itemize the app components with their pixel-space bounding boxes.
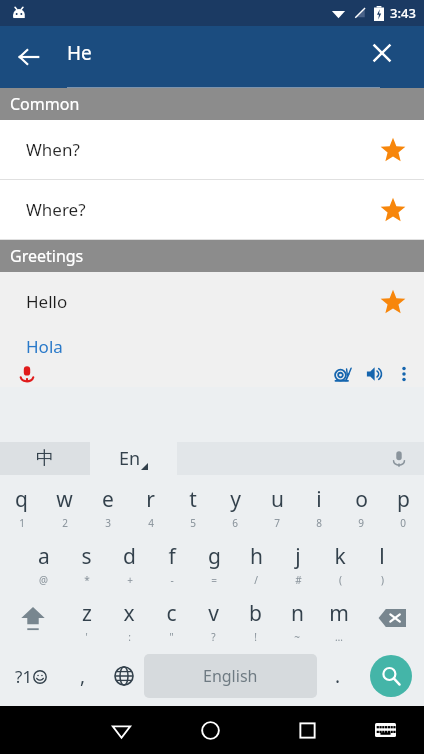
staticText: 7 (274, 516, 280, 530)
button[interactable]: ?1 (0, 646, 62, 706)
staticText: p (397, 485, 410, 514)
button[interactable]: Switch keyboard (353, 706, 418, 754)
button[interactable]: Play (362, 361, 388, 387)
staticText: 8 (316, 516, 322, 530)
staticText: 中 (36, 447, 54, 470)
button[interactable]: k (319, 532, 361, 589)
staticText: i (316, 485, 322, 514)
staticText: f (168, 542, 176, 571)
staticText: x (123, 599, 135, 628)
button[interactable]: q (0, 475, 43, 532)
button[interactable]: n (276, 589, 318, 646)
staticText: @ (39, 573, 48, 587)
button[interactable]: d (108, 532, 151, 589)
button[interactable]: j (277, 532, 319, 589)
button[interactable]: p (382, 475, 424, 532)
button[interactable]: i (298, 475, 340, 532)
staticText: ?1 (15, 665, 33, 688)
button[interactable]: Back (8, 36, 50, 78)
staticText: 5 (190, 516, 196, 530)
button[interactable]: b (234, 589, 276, 646)
staticText: u (271, 485, 284, 514)
button[interactable]: Back (83, 706, 159, 754)
button[interactable]: e (86, 475, 129, 532)
button[interactable]: En (90, 442, 177, 475)
staticText: 9 (358, 516, 364, 530)
staticText: En (119, 446, 141, 471)
button[interactable]: Play slowly (330, 361, 356, 387)
staticText: k (334, 542, 346, 571)
button[interactable]: v (192, 589, 234, 646)
button[interactable]: s (65, 532, 108, 589)
staticText: n (291, 599, 304, 628)
staticText: , (80, 663, 86, 689)
staticText: Greetings (10, 245, 84, 267)
staticText: q (15, 485, 28, 514)
staticText: l (379, 542, 385, 571)
staticText: 3:43 (390, 4, 416, 22)
staticText: 6 (232, 516, 238, 530)
button[interactable]: Favorite (376, 285, 410, 319)
other: Voice input (388, 448, 410, 470)
button[interactable]: l (361, 532, 403, 589)
button[interactable]: Hello (0, 272, 424, 387)
staticText: z (82, 599, 92, 628)
button[interactable]: . (317, 646, 358, 706)
staticText: e (102, 485, 114, 514)
button[interactable]: Favorite (376, 193, 410, 227)
button[interactable]: m (318, 589, 360, 646)
button[interactable]: English (144, 654, 317, 698)
staticText: Hello (26, 290, 68, 313)
button[interactable]: y (214, 475, 256, 532)
button[interactable]: t (172, 475, 214, 532)
button[interactable]: Home (159, 706, 262, 754)
staticText: # (295, 573, 302, 587)
staticText: ! (254, 630, 257, 644)
button[interactable]: u (256, 475, 298, 532)
button[interactable]: w (43, 475, 86, 532)
staticText: t (189, 485, 197, 514)
button[interactable]: Recent apps (262, 706, 353, 754)
button[interactable]: More options (392, 362, 416, 386)
staticText: j (295, 542, 301, 571)
button[interactable]: Change language (103, 646, 144, 706)
staticText: " (169, 630, 174, 644)
staticText: / (254, 573, 258, 587)
staticText: v (208, 599, 219, 628)
staticText: ? (211, 630, 216, 644)
button[interactable]: o (340, 475, 382, 532)
button[interactable]: Voice input (177, 442, 424, 475)
staticText: d (123, 542, 136, 571)
staticText: o (355, 485, 368, 514)
button[interactable]: , (62, 646, 103, 706)
button[interactable]: Shift (0, 589, 65, 646)
button[interactable]: z (65, 589, 108, 646)
button[interactable]: c (150, 589, 192, 646)
button[interactable]: h (235, 532, 277, 589)
staticText: 4 (148, 516, 154, 530)
staticText: ) (381, 573, 384, 587)
button[interactable]: Backspace (360, 589, 424, 646)
staticText: . (335, 663, 341, 689)
button[interactable]: Search (358, 646, 424, 706)
staticText: 1 (19, 516, 25, 530)
button[interactable]: x (108, 589, 150, 646)
staticText: m (329, 599, 349, 628)
staticText: 2 (62, 516, 68, 530)
staticText: = (211, 573, 217, 587)
staticText: ( (339, 573, 342, 587)
staticText: r (146, 485, 155, 514)
staticText: c (166, 599, 177, 628)
button[interactable]: Where? (0, 180, 424, 240)
button[interactable]: When? (0, 120, 424, 180)
button[interactable]: Clear (364, 35, 400, 71)
button[interactable]: Chinese input (0, 442, 90, 475)
button[interactable]: a (22, 532, 65, 589)
button[interactable]: g (193, 532, 235, 589)
button[interactable]: r (129, 475, 172, 532)
button[interactable]: f (151, 532, 193, 589)
button[interactable]: Record (14, 361, 40, 387)
button[interactable]: Favorite (376, 133, 410, 167)
staticText: h (250, 542, 263, 571)
staticText: Hola (26, 335, 63, 358)
